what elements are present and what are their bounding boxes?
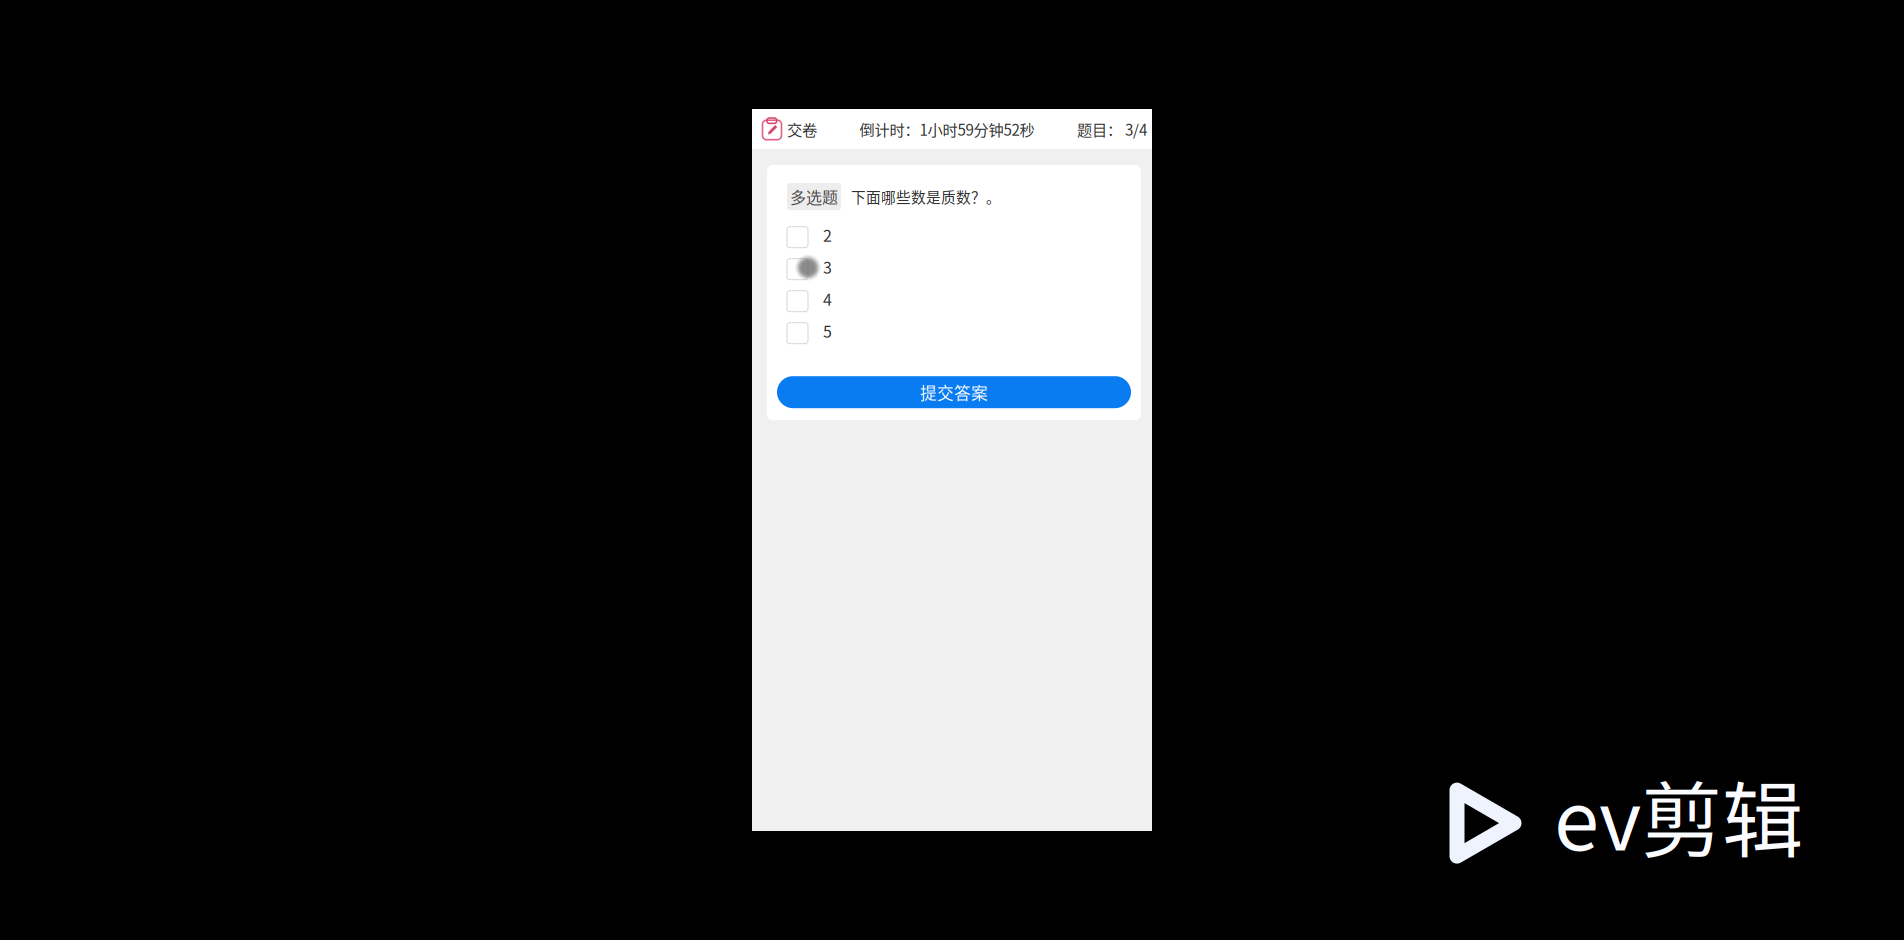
button[interactable]: 4 [787, 285, 1121, 317]
staticText: 2 [823, 223, 832, 246]
staticText: 交卷 [787, 118, 817, 140]
staticText: 提交答案 [920, 380, 988, 404]
staticText: 倒计时：1小时59分钟52秒 [859, 118, 1034, 140]
staticText: 5 [823, 319, 832, 342]
staticText: 3 [823, 255, 832, 278]
staticText: 多选题 [790, 185, 838, 208]
staticText: 4 [823, 287, 832, 310]
button[interactable]: 交卷 [762, 118, 817, 140]
button[interactable]: 提交答案 [777, 376, 1131, 408]
button[interactable]: 2 [787, 221, 1121, 253]
staticText: ev剪辑 [1554, 756, 1803, 874]
button[interactable]: 5 [787, 317, 1121, 349]
staticText: 题目： 3/4 [1077, 118, 1147, 140]
button[interactable]: 3 [787, 253, 1121, 285]
staticText: 下面哪些数是质数？。 [851, 186, 1001, 207]
